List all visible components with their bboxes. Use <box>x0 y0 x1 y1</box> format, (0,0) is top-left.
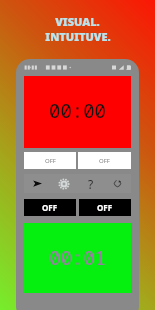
staticText: OFF <box>99 157 110 165</box>
staticText: INTUITUVE. <box>45 29 111 44</box>
staticText: 00:00 <box>49 98 107 124</box>
button[interactable]: OFF <box>24 199 76 216</box>
staticText: OFF <box>97 202 113 213</box>
button[interactable]: Help <box>77 174 104 193</box>
staticText: OFF <box>42 202 58 213</box>
button[interactable]: OFF <box>78 152 131 169</box>
staticText: OFF <box>45 157 56 165</box>
staticText: 00:01 <box>49 245 107 271</box>
button[interactable]: OFF <box>79 199 131 216</box>
button[interactable]: Play <box>24 174 50 193</box>
staticText: VISUAL. <box>55 14 100 29</box>
button[interactable]: Settings <box>50 174 77 193</box>
button[interactable]: Reset <box>104 174 131 193</box>
button[interactable]: OFF <box>24 152 76 169</box>
staticText: ? <box>88 176 94 192</box>
